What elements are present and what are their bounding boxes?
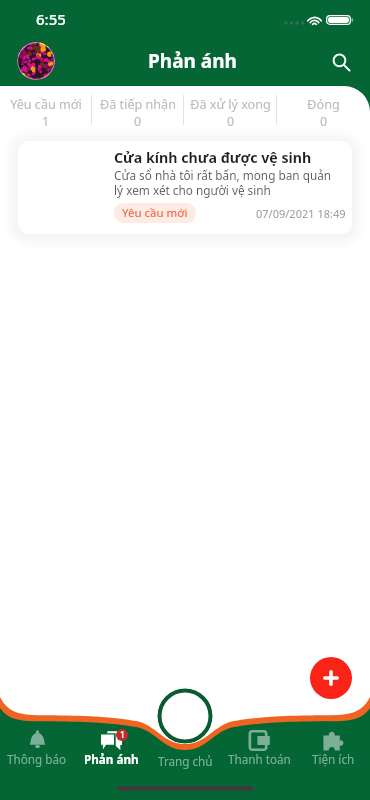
button[interactable]: Tiện ích	[296, 724, 370, 772]
staticText: Đã tiếp nhận	[100, 96, 176, 113]
staticText: Phản ánh	[148, 48, 237, 74]
staticText: 1	[42, 113, 50, 130]
button[interactable]: Home	[157, 688, 213, 744]
staticText: Cửa sổ nhà tôi rất bẩn, mong ban quản lý…	[114, 167, 338, 198]
staticText: 0	[134, 113, 142, 130]
staticText: 1	[120, 729, 125, 741]
staticText: 6:55	[36, 9, 66, 29]
button[interactable]: Search	[323, 44, 360, 81]
button[interactable]: Cửa kính chưa được vệ sinh	[18, 141, 352, 234]
button[interactable]: Đã xử lý xong	[184, 95, 277, 137]
staticText: Yêu cầu mới	[10, 96, 82, 113]
button[interactable]: Profile	[17, 42, 55, 80]
button[interactable]: Thông báo	[0, 724, 74, 772]
button[interactable]: Đã tiếp nhận	[92, 95, 184, 137]
staticText: Phản ánh	[84, 751, 139, 767]
staticText: Thanh toán	[228, 751, 291, 767]
button[interactable]: Add	[310, 657, 352, 699]
staticText: Tiện ích	[312, 751, 355, 767]
staticText: Đóng	[307, 96, 340, 113]
staticText: 0	[320, 113, 328, 130]
button[interactable]: Trang chủ	[148, 724, 222, 772]
staticText: 07/09/2021 18:49	[256, 206, 346, 221]
staticText: Đã xử lý xong	[190, 96, 271, 113]
button[interactable]: Thanh toán	[222, 724, 296, 772]
staticText: Trang chủ	[158, 753, 213, 769]
button[interactable]: Yêu cầu mới	[0, 95, 92, 137]
button[interactable]: Đóng	[277, 95, 370, 137]
staticText: Yêu cầu mới	[122, 205, 188, 221]
staticText: 0	[227, 113, 235, 130]
staticText: Thông báo	[7, 751, 67, 767]
staticText: Cửa kính chưa được vệ sinh	[114, 148, 312, 167]
button[interactable]: 1	[74, 724, 148, 772]
